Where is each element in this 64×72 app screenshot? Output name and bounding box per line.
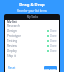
staticText: Reset [8, 66, 16, 70]
staticText: Done [50, 44, 57, 48]
staticText: Research [7, 24, 20, 28]
staticText: My Tasks [27, 15, 38, 19]
staticText: Testing [7, 39, 18, 43]
staticText: Done [50, 49, 57, 53]
staticText: Design [7, 29, 17, 33]
button[interactable]: Testing [5, 38, 59, 43]
staticText: Drag & Drop [19, 2, 45, 8]
staticText: Prototype [7, 34, 21, 38]
staticText: Done [50, 29, 57, 33]
staticText: Deploy [7, 49, 17, 53]
button[interactable]: Reset [7, 65, 17, 71]
button[interactable]: Design [5, 28, 59, 33]
staticText: Done [50, 39, 57, 43]
staticText: Save order [44, 67, 57, 70]
button[interactable]: Research [5, 23, 59, 28]
button[interactable]: Review [5, 43, 59, 48]
staticText: Done [50, 34, 57, 38]
staticText: Reorder your list items [17, 9, 47, 13]
staticText: Ship it [7, 54, 16, 58]
button[interactable]: Prototype [5, 33, 59, 38]
staticText: Review [7, 44, 17, 48]
staticText: My list [7, 20, 17, 23]
button[interactable]: Save order [44, 66, 57, 70]
button[interactable]: Deploy [5, 48, 59, 53]
button[interactable]: Ship it [5, 53, 59, 58]
